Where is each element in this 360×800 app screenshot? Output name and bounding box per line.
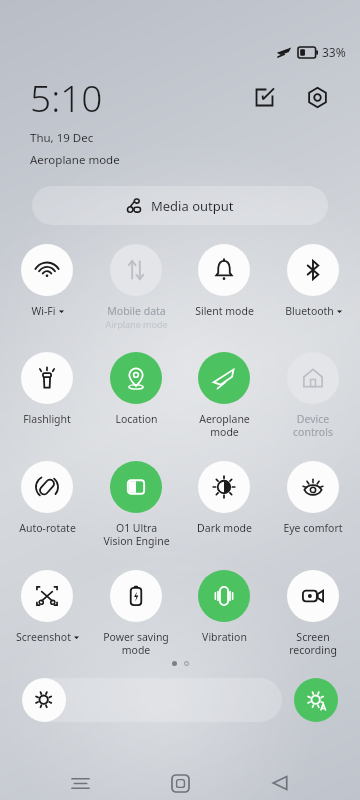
staticText: Vibration — [202, 630, 247, 644]
staticText: Eye comfort — [283, 521, 343, 535]
staticText: Power saving mode — [103, 630, 169, 657]
button[interactable]: Media output — [32, 186, 328, 225]
button[interactable]: Recent apps — [60, 766, 100, 800]
button[interactable]: Brightness — [22, 678, 282, 722]
button[interactable]: Aeroplane mode — [182, 352, 266, 439]
staticText: Media output — [151, 197, 234, 215]
button[interactable]: Silent mode — [182, 244, 266, 318]
button[interactable]: O1 Ultra Vision Engine — [94, 461, 178, 548]
staticText: Aeroplane mode — [199, 412, 250, 439]
button[interactable]: Screenshot — [5, 570, 89, 644]
staticText: Location — [115, 412, 158, 426]
button[interactable]: Device controls — [271, 352, 355, 439]
staticText: 33% — [322, 44, 346, 60]
button[interactable]: Dark mode — [182, 461, 266, 535]
button[interactable]: Wi-Fi — [5, 244, 89, 318]
button[interactable]: Screen recording — [271, 570, 355, 657]
staticText: Silent mode — [195, 304, 254, 318]
button[interactable]: Mobile data — [94, 244, 178, 330]
button[interactable]: Home — [160, 766, 200, 800]
staticText: Flashlight — [23, 412, 71, 426]
button[interactable]: Auto brightness — [294, 678, 338, 722]
staticText: Thu, 19 Dec — [30, 130, 94, 146]
staticText: Bluetooth — [285, 304, 334, 318]
staticText: Airplane mode — [105, 318, 168, 330]
button[interactable]: Bluetooth — [271, 244, 355, 318]
button[interactable]: Edit — [247, 80, 281, 114]
button[interactable]: Auto-rotate — [5, 461, 89, 535]
staticText: Mobile data — [107, 304, 166, 318]
staticText: Aeroplane mode — [30, 152, 120, 168]
button[interactable]: Vibration — [182, 570, 266, 644]
staticText: 5:10 — [30, 72, 103, 122]
staticText: Screen recording — [289, 630, 337, 657]
staticText: Wi-Fi — [31, 304, 56, 318]
button[interactable]: Eye comfort — [271, 461, 355, 535]
button[interactable]: Location — [94, 352, 178, 426]
button[interactable]: Settings — [300, 80, 334, 114]
staticText: Auto-rotate — [19, 521, 76, 535]
staticText: Screenshot — [16, 630, 71, 644]
button[interactable]: Power saving mode — [94, 570, 178, 657]
staticText: Device controls — [293, 412, 333, 439]
button[interactable]: Back — [260, 766, 300, 800]
button[interactable]: Flashlight — [5, 352, 89, 426]
staticText: O1 Ultra Vision Engine — [103, 521, 170, 548]
staticText: Dark mode — [197, 521, 252, 535]
